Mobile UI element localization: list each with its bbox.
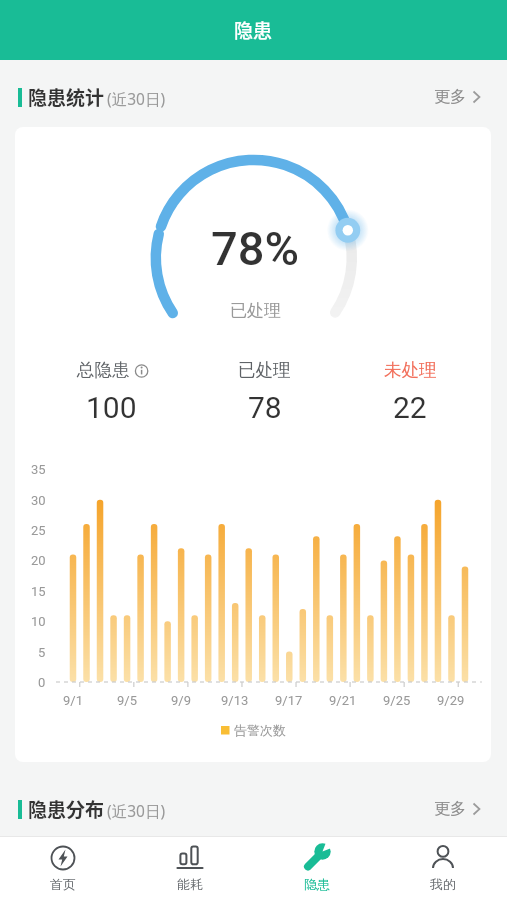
staticText: 隐患统计	[28, 83, 105, 111]
staticText: 10	[31, 614, 46, 629]
staticText: 20	[31, 553, 46, 568]
button[interactable]: 能耗	[127, 837, 254, 900]
staticText: 9/9	[171, 693, 191, 708]
button[interactable]: 隐患	[0, 0, 507, 60]
staticText: (近30日)	[107, 800, 166, 821]
button[interactable]: 更多	[428, 792, 490, 826]
staticText: 9/1	[63, 693, 83, 708]
staticText: (近30日)	[107, 88, 166, 109]
staticText: 隐患	[234, 16, 273, 44]
staticText: 9/5	[117, 693, 137, 708]
staticText: 78	[248, 390, 282, 425]
staticText: 首页	[50, 876, 76, 892]
staticText: 15	[31, 584, 46, 599]
staticText: 25	[31, 523, 46, 538]
staticText: 我的	[430, 876, 456, 892]
staticText: 9/25	[383, 693, 411, 708]
staticText: 已处理	[238, 359, 291, 381]
staticText: 已处理	[230, 300, 281, 321]
staticText: 30	[31, 493, 46, 508]
staticText: 总隐患	[77, 359, 130, 381]
staticText: 更多	[434, 799, 466, 819]
staticText: 隐患分布	[28, 795, 105, 823]
staticText: 9/29	[437, 693, 465, 708]
staticText: 5	[38, 645, 46, 660]
button[interactable]: 隐患	[254, 837, 381, 900]
button[interactable]: 更多	[428, 80, 490, 114]
staticText: 0	[38, 675, 46, 690]
staticText: 隐患	[304, 876, 330, 892]
staticText: 未处理	[384, 359, 437, 381]
staticText: 9/17	[275, 693, 303, 708]
staticText: 100	[86, 390, 137, 425]
staticText: 9/21	[329, 693, 357, 708]
staticText: 22	[393, 390, 427, 425]
staticText: 35	[31, 462, 46, 477]
staticText: 能耗	[177, 876, 203, 892]
staticText: 更多	[434, 87, 466, 107]
button[interactable]: 我的	[380, 837, 507, 900]
staticText: 9/13	[221, 693, 249, 708]
staticText: 告警次数	[234, 722, 286, 738]
staticText: 78%	[211, 221, 299, 267]
button[interactable]: 首页	[0, 837, 127, 900]
